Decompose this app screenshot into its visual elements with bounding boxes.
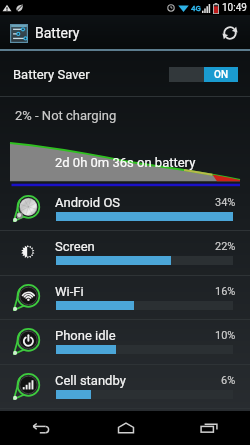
staticText: Cell standby (55, 373, 126, 388)
button[interactable]: Android OS (0, 187, 250, 231)
button[interactable]: Recent apps (167, 411, 250, 445)
staticText: 2d 0h 0m 36s on battery (55, 155, 196, 170)
button[interactable]: Home (84, 411, 167, 445)
button[interactable]: Phone idle (0, 320, 250, 365)
staticText: 10% (215, 329, 236, 342)
button[interactable]: Battery Saver (0, 51, 250, 97)
staticText: 6% (221, 374, 236, 387)
staticText: Battery Saver (13, 67, 90, 82)
staticText: Battery (35, 25, 80, 41)
button[interactable]: Refresh (216, 19, 244, 47)
staticText: 22% (215, 240, 236, 253)
staticText: 2% - Not charging (15, 108, 117, 123)
button[interactable]: Wi-Fi (0, 276, 250, 320)
button[interactable]: Battery (10, 15, 243, 51)
button[interactable]: Back (0, 411, 84, 445)
staticText: 4G (191, 4, 201, 13)
staticText: 10:49 (222, 2, 247, 14)
button[interactable]: 2d 0h 0m 36s on battery (0, 134, 250, 187)
button[interactable]: Screen (0, 231, 250, 276)
staticText: ON (214, 69, 229, 81)
staticText: 16% (215, 285, 236, 298)
button[interactable]: Cell standby (0, 365, 250, 409)
staticText: Phone idle (55, 328, 116, 343)
staticText: 34% (215, 196, 236, 209)
staticText: Screen (55, 239, 95, 254)
staticText: Wi-Fi (55, 284, 84, 299)
staticText: Android OS (55, 195, 121, 210)
